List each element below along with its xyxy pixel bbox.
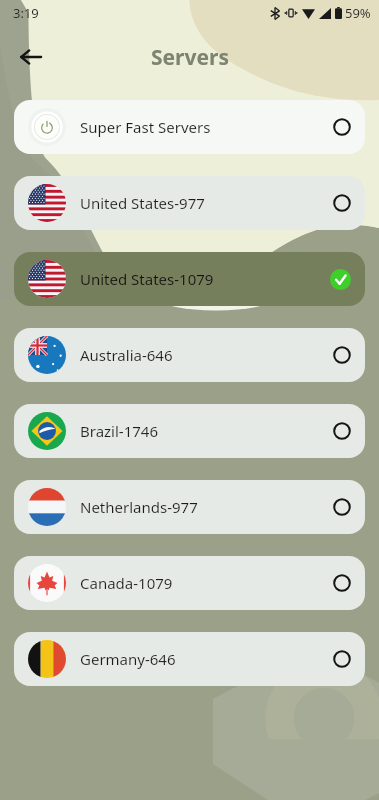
staticText: Super Fast Servers [80, 117, 333, 137]
staticText: Germany-646 [80, 649, 333, 669]
button[interactable]: Australia-646 [14, 328, 365, 382]
button[interactable]: Super Fast Servers [14, 100, 365, 154]
button[interactable]: Canada-1079 [14, 556, 365, 610]
staticText: 59% [345, 4, 371, 22]
button[interactable]: Brazil-1746 [14, 404, 365, 458]
staticText: Canada-1079 [80, 573, 333, 593]
button[interactable]: Germany-646 [14, 632, 365, 686]
staticText: Brazil-1746 [80, 421, 333, 441]
button[interactable]: United States-1079 [14, 252, 365, 306]
staticText: Netherlands-977 [80, 497, 333, 517]
button[interactable]: United States-977 [14, 176, 365, 230]
staticText: United States-977 [80, 193, 333, 213]
staticText: Servers [151, 43, 229, 72]
staticText: Australia-646 [80, 345, 333, 365]
staticText: 3:19 [13, 4, 39, 22]
button[interactable]: Netherlands-977 [14, 480, 365, 534]
button[interactable]: Back [10, 36, 52, 78]
staticText: United States-1079 [80, 269, 330, 289]
